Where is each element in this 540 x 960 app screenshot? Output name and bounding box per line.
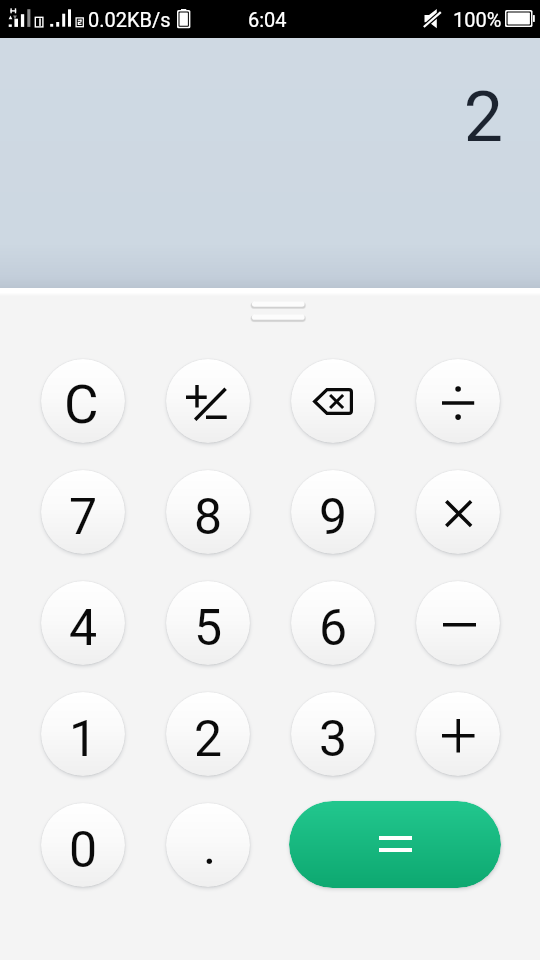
button[interactable]: Minus [416, 581, 500, 665]
button[interactable]: 5 [166, 581, 250, 665]
button[interactable]: Multiply [416, 470, 500, 554]
button[interactable]: Plus minus [166, 359, 250, 443]
button[interactable]: Divide [416, 359, 500, 443]
staticText: 0.02KB/s [88, 8, 171, 31]
staticText: 3 [319, 710, 348, 769]
staticText: 2 [194, 710, 223, 769]
button[interactable]: 3 [291, 692, 375, 776]
button[interactable]: 0 [41, 803, 125, 887]
button[interactable]: Drag handle [249, 299, 309, 325]
button[interactable]: Decimal point [166, 803, 250, 887]
staticText: 2 [463, 76, 503, 158]
staticText: 100% [453, 8, 502, 31]
button[interactable]: Equals [289, 801, 501, 888]
button[interactable]: C [41, 359, 125, 443]
staticText: 4 [69, 599, 98, 658]
staticText: 9 [319, 488, 348, 547]
button[interactable]: Add [416, 692, 500, 776]
button[interactable]: 6 [291, 581, 375, 665]
button[interactable]: 1 [41, 692, 125, 776]
staticText: 8 [194, 488, 223, 547]
staticText: . [203, 818, 217, 877]
staticText: C [64, 374, 99, 436]
button[interactable]: 4 [41, 581, 125, 665]
staticText: 6:04 [248, 8, 287, 31]
staticText: 5 [194, 599, 223, 658]
button[interactable]: 2 [166, 692, 250, 776]
staticText: 7 [69, 488, 98, 547]
button[interactable]: 7 [41, 470, 125, 554]
button[interactable]: Backspace [291, 359, 375, 443]
button[interactable]: 9 [291, 470, 375, 554]
staticText: 6 [319, 599, 348, 658]
button[interactable]: 8 [166, 470, 250, 554]
staticText: 0 [69, 821, 98, 880]
staticText: 1 [69, 710, 98, 769]
